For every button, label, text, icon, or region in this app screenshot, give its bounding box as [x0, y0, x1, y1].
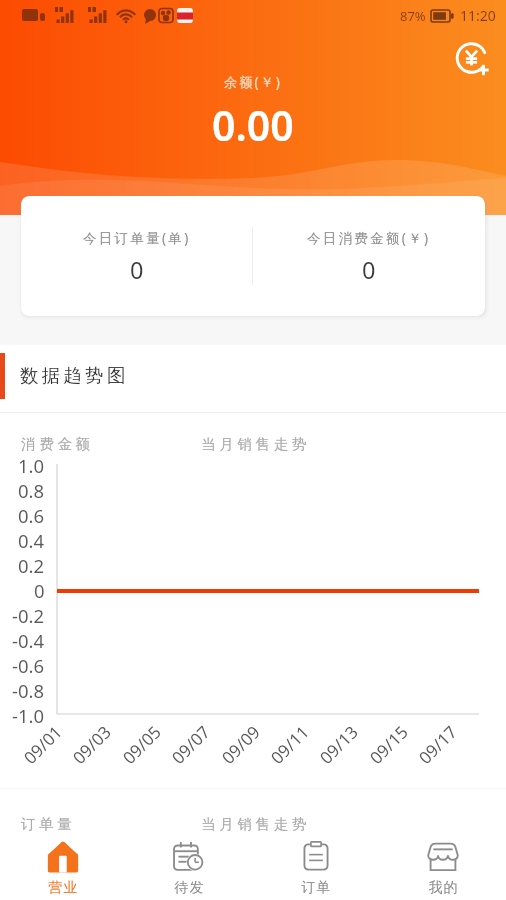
- button[interactable]: 订单: [252, 836, 379, 900]
- staticText: 11:20: [460, 6, 496, 25]
- staticText: 87%: [400, 7, 426, 25]
- staticText: 0.6: [18, 503, 45, 525]
- button[interactable]: Recharge: [457, 44, 495, 82]
- button[interactable]: 今日消费金额(￥): [253, 196, 485, 316]
- staticText: 09/15: [364, 720, 413, 769]
- staticText: 当月销售走势: [201, 435, 311, 453]
- staticText: 待发: [174, 879, 204, 897]
- staticText: 订单量: [21, 815, 76, 833]
- staticText: 09/11: [265, 720, 314, 769]
- staticText: -1.0: [12, 703, 45, 725]
- staticText: 0.4: [18, 528, 45, 550]
- staticText: -0.8: [12, 678, 45, 700]
- staticText: 今日订单量(单): [83, 229, 191, 247]
- staticText: 09/13: [314, 720, 363, 769]
- staticText: 0: [362, 254, 376, 286]
- button[interactable]: 我的: [379, 836, 506, 900]
- staticText: 我的: [428, 879, 458, 897]
- staticText: 数据趋势图: [20, 364, 129, 387]
- staticText: 09/03: [67, 720, 116, 769]
- staticText: 消费金额: [21, 435, 94, 453]
- staticText: 09/17: [413, 720, 462, 769]
- staticText: 0.8: [18, 478, 45, 500]
- staticText: -0.2: [12, 603, 45, 625]
- button[interactable]: 待发: [126, 836, 252, 900]
- staticText: 1.0: [18, 453, 45, 475]
- staticText: -0.4: [12, 628, 45, 650]
- staticText: 09/05: [117, 720, 166, 769]
- staticText: 营业: [48, 879, 78, 897]
- staticText: 09/09: [216, 720, 265, 769]
- staticText: 今日消费金额(￥): [307, 229, 431, 247]
- staticText: 余额(￥): [224, 73, 282, 91]
- staticText: 09/01: [18, 720, 67, 769]
- staticText: 订单: [301, 879, 331, 897]
- staticText: 当月销售走势: [201, 815, 311, 833]
- staticText: 0.00: [212, 97, 294, 153]
- button[interactable]: 今日订单量(单): [21, 196, 252, 316]
- staticText: 0.2: [18, 553, 45, 575]
- staticText: -0.6: [12, 653, 45, 675]
- button[interactable]: 营业: [0, 836, 126, 900]
- staticText: 0: [130, 254, 144, 286]
- staticText: 09/07: [166, 720, 215, 769]
- staticText: 0: [34, 578, 45, 600]
